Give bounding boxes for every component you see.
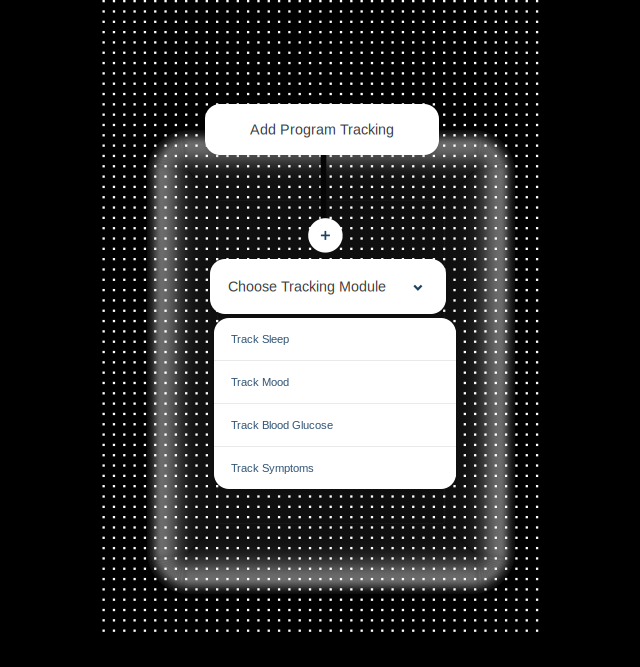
- button[interactable]: Track Blood Glucose: [214, 404, 456, 447]
- button[interactable]: Add Program Tracking: [205, 104, 439, 155]
- button[interactable]: Track Mood: [214, 361, 456, 404]
- staticText: Add Program Tracking: [250, 121, 394, 137]
- button[interactable]: Track Symptoms: [214, 447, 456, 489]
- staticText: Track Sleep: [231, 333, 289, 345]
- staticText: Track Symptoms: [231, 462, 314, 474]
- staticText: Track Mood: [231, 376, 289, 388]
- staticText: Choose Tracking Module: [228, 278, 386, 294]
- button[interactable]: Track Sleep: [214, 318, 456, 361]
- button[interactable]: Add tracking module: [308, 218, 343, 253]
- staticText: Track Blood Glucose: [231, 419, 333, 431]
- button[interactable]: Choose Tracking Module: [210, 259, 446, 314]
